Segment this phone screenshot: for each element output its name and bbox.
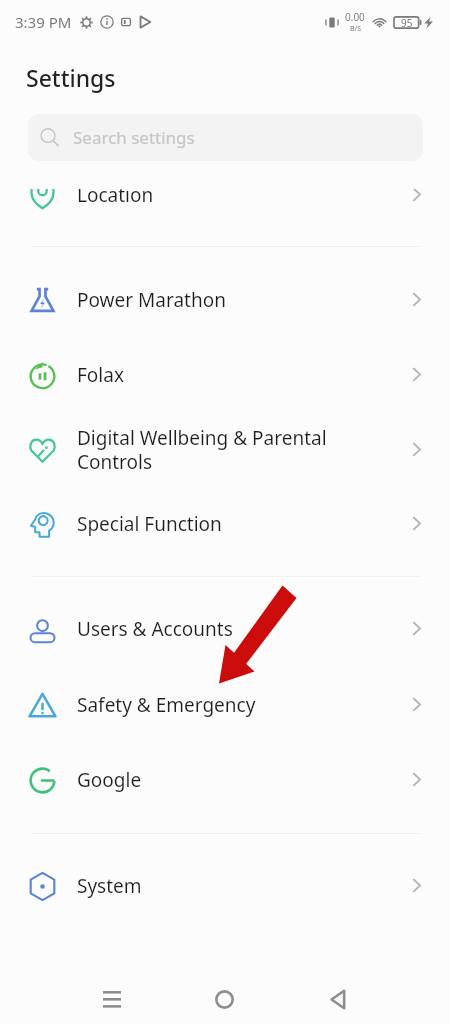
staticText: Settings bbox=[26, 62, 116, 93]
staticText: Search settings bbox=[73, 126, 195, 149]
staticText: Power Marathon bbox=[77, 287, 389, 313]
button[interactable]: Safety & Emergency bbox=[0, 668, 450, 743]
staticText: Google bbox=[77, 767, 389, 793]
button[interactable]: Back bbox=[281, 960, 394, 1024]
staticText: 3:39 PM bbox=[15, 12, 72, 32]
staticText: Users & Accounts bbox=[77, 616, 389, 642]
button[interactable]: Power Marathon bbox=[0, 263, 450, 338]
button[interactable]: System bbox=[0, 849, 450, 924]
button[interactable]: Google bbox=[0, 743, 450, 818]
staticText: B/S bbox=[350, 24, 361, 34]
staticText: Special Function bbox=[77, 511, 389, 537]
button[interactable]: Digital Wellbeing & Parental Controls bbox=[0, 413, 450, 488]
button[interactable]: Special Function bbox=[0, 487, 450, 562]
staticText: Folax bbox=[77, 362, 389, 388]
staticText: Digital Wellbeing & Parental Controls bbox=[77, 425, 389, 474]
staticText: Location bbox=[77, 189, 389, 208]
other: Annotation arrow bbox=[0, 0, 450, 1024]
button[interactable]: Search settings bbox=[28, 114, 423, 161]
button[interactable]: Home bbox=[168, 960, 281, 1024]
button[interactable]: Location bbox=[0, 189, 450, 233]
button[interactable]: Users & Accounts bbox=[0, 592, 450, 667]
button[interactable]: Recent apps bbox=[56, 960, 168, 1024]
staticText: 95 bbox=[401, 16, 413, 30]
staticText: Safety & Emergency bbox=[77, 692, 389, 718]
button[interactable]: Folax bbox=[0, 338, 450, 413]
staticText: System bbox=[77, 873, 389, 899]
staticText: 0.00 bbox=[345, 10, 365, 24]
